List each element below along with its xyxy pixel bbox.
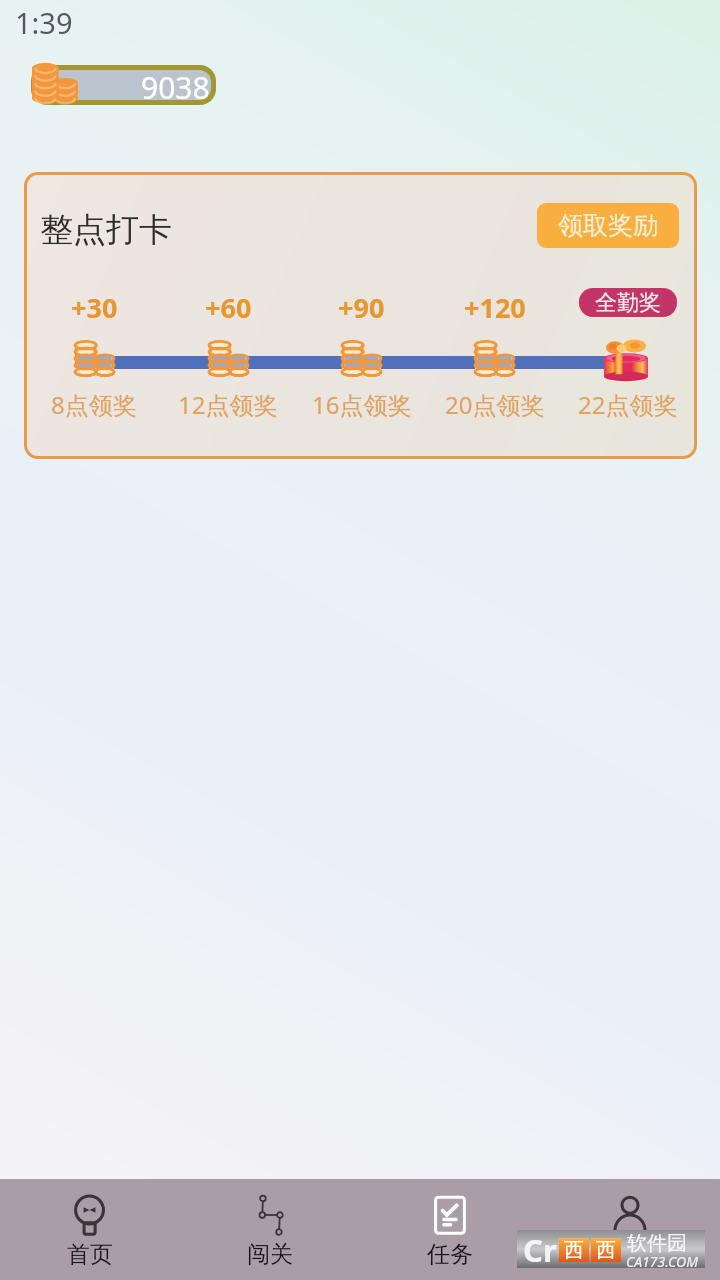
button[interactable]: 我的 bbox=[540, 1179, 720, 1280]
staticText: 全勤奖 bbox=[595, 289, 661, 317]
button[interactable]: 首页 bbox=[0, 1179, 180, 1280]
button[interactable]: 领取奖励 bbox=[537, 203, 679, 248]
staticText: CA173.COM bbox=[626, 1252, 698, 1271]
staticText: +90 bbox=[338, 289, 385, 326]
staticText: +30 bbox=[71, 289, 118, 326]
staticText: 20点领奖 bbox=[445, 388, 545, 421]
staticText: 首页 bbox=[67, 1240, 113, 1269]
staticText: 8点领奖 bbox=[51, 388, 137, 421]
button[interactable]: 闯关 bbox=[180, 1179, 360, 1280]
staticText: 我的 bbox=[607, 1240, 653, 1269]
staticText: 整点打卡 bbox=[40, 209, 172, 251]
staticText: +60 bbox=[205, 289, 252, 326]
button[interactable]: 任务 bbox=[360, 1179, 540, 1280]
button[interactable]: 全勤奖 bbox=[561, 175, 694, 456]
staticText: 22点领奖 bbox=[578, 388, 678, 421]
button[interactable]: +30 bbox=[27, 175, 161, 456]
staticText: 西 bbox=[596, 1238, 616, 1262]
staticText: 闯关 bbox=[247, 1240, 293, 1269]
staticText: 软件园 bbox=[627, 1231, 687, 1256]
staticText: 任务 bbox=[427, 1240, 473, 1269]
staticText: 西 bbox=[564, 1238, 584, 1262]
button[interactable]: +60 bbox=[161, 175, 295, 456]
staticText: Cr bbox=[523, 1229, 557, 1267]
button[interactable]: +90 bbox=[295, 175, 428, 456]
staticText: 9038 bbox=[141, 67, 210, 108]
staticText: +120 bbox=[464, 289, 526, 326]
button[interactable]: +120 bbox=[428, 175, 561, 456]
staticText: 领取奖励 bbox=[558, 210, 658, 241]
staticText: 1:39 bbox=[15, 3, 73, 42]
button[interactable]: 9038 bbox=[28, 64, 220, 114]
staticText: 16点领奖 bbox=[312, 388, 412, 421]
staticText: 12点领奖 bbox=[178, 388, 278, 421]
